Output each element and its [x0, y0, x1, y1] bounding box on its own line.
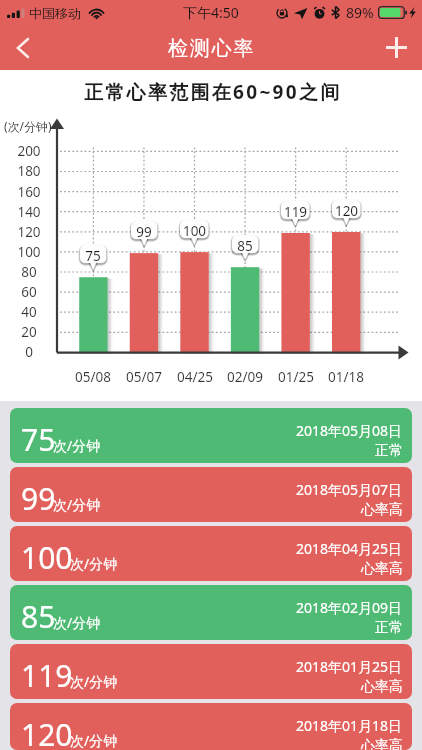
staticText: 次/分钟: [70, 731, 118, 750]
button[interactable]: 120: [10, 703, 412, 750]
button[interactable]: 75: [10, 408, 412, 463]
staticText: 2018年05月07日: [296, 480, 403, 499]
staticText: 80: [9, 263, 49, 281]
staticText: 85: [21, 596, 56, 637]
staticText: 2018年01月25日: [296, 657, 403, 676]
staticText: 100: [9, 243, 49, 261]
button[interactable]: Add: [373, 25, 419, 70]
staticText: 正常: [375, 619, 403, 637]
button[interactable]: 100: [10, 526, 412, 581]
staticText: 200: [9, 142, 49, 160]
staticText: 2018年05月08日: [296, 421, 403, 440]
staticText: 20: [9, 323, 49, 341]
staticText: 75: [21, 419, 56, 460]
button[interactable]: 85: [10, 585, 412, 640]
staticText: 心率高: [361, 737, 403, 750]
staticText: 119: [21, 655, 73, 696]
staticText: 2018年02月09日: [296, 598, 403, 617]
staticText: 下午4:50: [183, 3, 239, 22]
staticText: 40: [9, 303, 49, 321]
staticText: 75: [74, 247, 112, 265]
button[interactable]: 99: [10, 467, 412, 522]
staticText: 89%: [346, 3, 374, 22]
staticText: 心率高: [361, 501, 403, 519]
staticText: 2018年04月25日: [296, 539, 403, 558]
staticText: 次/分钟: [70, 554, 118, 573]
staticText: 正常心率范围在60~90之间: [84, 79, 342, 105]
staticText: 120: [21, 714, 73, 750]
staticText: 心率高: [361, 678, 403, 696]
staticText: 180: [9, 162, 49, 180]
button[interactable]: 119: [10, 644, 412, 699]
staticText: 99: [21, 478, 56, 519]
staticText: 次/分钟: [53, 436, 101, 455]
staticText: 中国移动: [29, 5, 81, 21]
staticText: 检测心率: [168, 36, 256, 61]
staticText: 次/分钟: [53, 495, 101, 514]
staticText: 100: [174, 222, 215, 240]
staticText: 心率高: [361, 560, 403, 578]
staticText: 85: [226, 237, 264, 255]
staticText: 次/分钟: [70, 672, 118, 691]
staticText: 正常: [375, 442, 403, 460]
staticText: 120: [326, 202, 367, 220]
staticText: 02/09: [215, 368, 275, 386]
staticText: 120: [9, 223, 49, 241]
staticText: 次/分钟: [53, 613, 101, 632]
staticText: 01/18: [316, 368, 376, 386]
staticText: 140: [9, 203, 49, 221]
staticText: 60: [9, 283, 49, 301]
staticText: 04/25: [165, 368, 225, 386]
staticText: 100: [21, 537, 73, 578]
staticText: 99: [125, 223, 163, 241]
staticText: 160: [9, 183, 49, 201]
staticText: (次/分钟): [4, 118, 52, 134]
staticText: 0: [9, 343, 49, 361]
staticText: 01/25: [266, 368, 326, 386]
staticText: 05/08: [63, 368, 123, 386]
button[interactable]: Back: [0, 26, 44, 70]
staticText: 119: [275, 203, 316, 221]
staticText: 05/07: [114, 368, 174, 386]
staticText: 2018年01月18日: [296, 716, 403, 735]
